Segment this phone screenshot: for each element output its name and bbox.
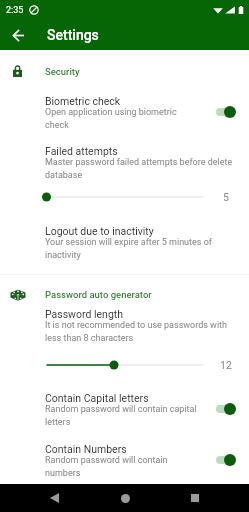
staticText: Open application using biometric check: [45, 107, 197, 130]
button[interactable]: Toggle: [216, 106, 236, 118]
staticText: 2:35: [6, 5, 24, 16]
staticText: Password auto generator: [45, 289, 152, 300]
button[interactable]: Contain Numbers: [0, 441, 249, 485]
button[interactable]: Slider: [42, 190, 208, 204]
staticText: Logout due to inactivity: [45, 225, 154, 237]
staticText: It is not recommended to use passwords w…: [45, 320, 238, 343]
staticText: Your session will expire after 5 minutes…: [45, 237, 238, 260]
staticText: Random password will contain numbers: [45, 455, 197, 478]
button[interactable]: Failed attempts: [45, 145, 238, 180]
staticText: Contain Numbers: [45, 443, 127, 455]
button[interactable]: Biometric check: [0, 93, 249, 137]
staticText: Contain Capital letters: [45, 392, 149, 404]
staticText: Random password will contain capital let…: [45, 404, 197, 427]
button[interactable]: Toggle: [216, 454, 236, 466]
staticText: Biometric check: [45, 95, 121, 107]
staticText: 5: [223, 191, 229, 203]
staticText: Master password failed attempts before d…: [45, 157, 238, 180]
button[interactable]: Contain Capital letters: [0, 390, 249, 434]
button[interactable]: Logout due to inactivity: [45, 225, 238, 260]
button[interactable]: Home: [108, 484, 142, 512]
staticText: 12: [220, 359, 232, 371]
staticText: Security: [45, 66, 80, 77]
staticText: Settings: [47, 27, 99, 43]
staticText: Password length: [45, 308, 124, 320]
button[interactable]: Back: [6, 23, 30, 47]
staticText: Failed attempts: [45, 145, 118, 157]
button[interactable]: Back: [37, 484, 71, 512]
button[interactable]: Slider: [42, 358, 208, 372]
button[interactable]: Recents: [178, 484, 212, 512]
button[interactable]: Password length: [45, 308, 238, 343]
button[interactable]: Toggle: [216, 403, 236, 415]
